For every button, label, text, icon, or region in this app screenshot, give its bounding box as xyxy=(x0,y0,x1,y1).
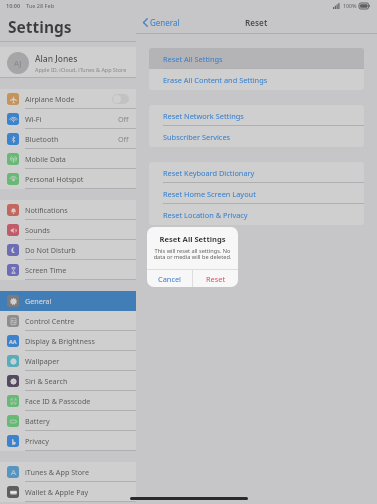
staticText: AA xyxy=(9,338,17,345)
staticText: 100% xyxy=(343,2,357,9)
button[interactable]: Reset Location & Privacy xyxy=(149,204,364,225)
button[interactable]: Siri & Search xyxy=(0,371,136,391)
staticText: Alan Jones xyxy=(35,53,78,65)
button[interactable]: Notifications xyxy=(0,200,136,220)
button[interactable]: Do Not Disturb xyxy=(0,240,136,260)
staticText: Reset All Settings xyxy=(147,234,238,244)
staticText: Personal Hotspot xyxy=(25,174,84,184)
button[interactable]: Sounds xyxy=(0,220,136,240)
button[interactable]: Wi-Fi xyxy=(0,109,136,129)
staticText: AJ xyxy=(14,58,22,68)
staticText: This will reset all settings. No data or… xyxy=(152,247,233,261)
button[interactable]: Privacy xyxy=(0,431,136,451)
staticText: Control Centre xyxy=(25,316,75,326)
staticText: Battery xyxy=(25,416,50,426)
button[interactable]: AJ xyxy=(0,47,136,78)
staticText: Subscriber Services xyxy=(163,132,231,142)
staticText: General xyxy=(150,17,180,28)
staticText: Mobile Data xyxy=(25,154,66,164)
staticText: Off xyxy=(118,114,129,124)
staticText: 10:00 xyxy=(6,2,21,9)
staticText: Settings xyxy=(8,16,72,37)
staticText: Apple ID, iCloud, iTunes & App Store xyxy=(35,66,127,73)
staticText: Reset Keyboard Dictionary xyxy=(163,168,255,178)
staticText: Off xyxy=(118,134,129,144)
button[interactable]: Mobile Data xyxy=(0,149,136,169)
staticText: Face ID & Passcode xyxy=(25,396,91,406)
button[interactable]: Subscriber Services xyxy=(149,126,364,147)
staticText: Reset xyxy=(245,17,268,28)
staticText: General xyxy=(25,296,52,306)
button[interactable]: Reset xyxy=(193,270,238,287)
button[interactable]: Reset Home Screen Layout xyxy=(149,183,364,204)
button[interactable]: Battery xyxy=(0,411,136,431)
button[interactable]: Reset Keyboard Dictionary xyxy=(149,162,364,183)
staticText: Reset All Settings xyxy=(163,54,223,64)
staticText: Do Not Disturb xyxy=(25,245,76,255)
button[interactable]: Wallpaper xyxy=(0,351,136,371)
button[interactable]: General xyxy=(0,291,136,311)
staticText: Wi-Fi xyxy=(25,114,42,124)
button[interactable]: Bluetooth xyxy=(0,129,136,149)
button[interactable]: Cancel xyxy=(147,270,192,287)
staticText: iTunes & App Store xyxy=(25,467,89,477)
button[interactable]: Reset All Settings xyxy=(149,48,364,69)
staticText: Tue 28 Feb xyxy=(26,2,55,9)
button[interactable]: Personal Hotspot xyxy=(0,169,136,189)
staticText: Siri & Search xyxy=(25,376,68,386)
staticText: Erase All Content and Settings xyxy=(163,75,268,85)
button[interactable]: Control Centre xyxy=(0,311,136,331)
staticText: Reset Home Screen Layout xyxy=(163,189,256,199)
staticText: Wallet & Apple Pay xyxy=(25,487,89,497)
staticText: Bluetooth xyxy=(25,134,59,144)
staticText: Cancel xyxy=(158,274,182,284)
staticText: Reset Location & Privacy xyxy=(163,210,248,220)
button[interactable]: iTunes & App Store xyxy=(0,462,136,482)
staticText: Airplane Mode xyxy=(25,94,75,104)
button[interactable]: Erase All Content and Settings xyxy=(149,69,364,90)
button[interactable]: Screen Time xyxy=(0,260,136,280)
staticText: Display & Brightness xyxy=(25,336,95,346)
staticText: Sounds xyxy=(25,225,51,235)
staticText: Reset Network Settings xyxy=(163,111,244,121)
button[interactable]: General xyxy=(141,14,182,31)
staticText: Screen Time xyxy=(25,265,67,275)
button[interactable]: Wallet & Apple Pay xyxy=(0,482,136,502)
staticText: Privacy xyxy=(25,436,49,446)
staticText: Reset xyxy=(206,274,226,284)
staticText: Wallpaper xyxy=(25,356,60,366)
button[interactable]: Face ID & Passcode xyxy=(0,391,136,411)
staticText: Notifications xyxy=(25,205,68,215)
button[interactable]: AA xyxy=(0,331,136,351)
button[interactable]: Reset Network Settings xyxy=(149,105,364,126)
button[interactable]: Airplane Mode xyxy=(0,89,136,109)
